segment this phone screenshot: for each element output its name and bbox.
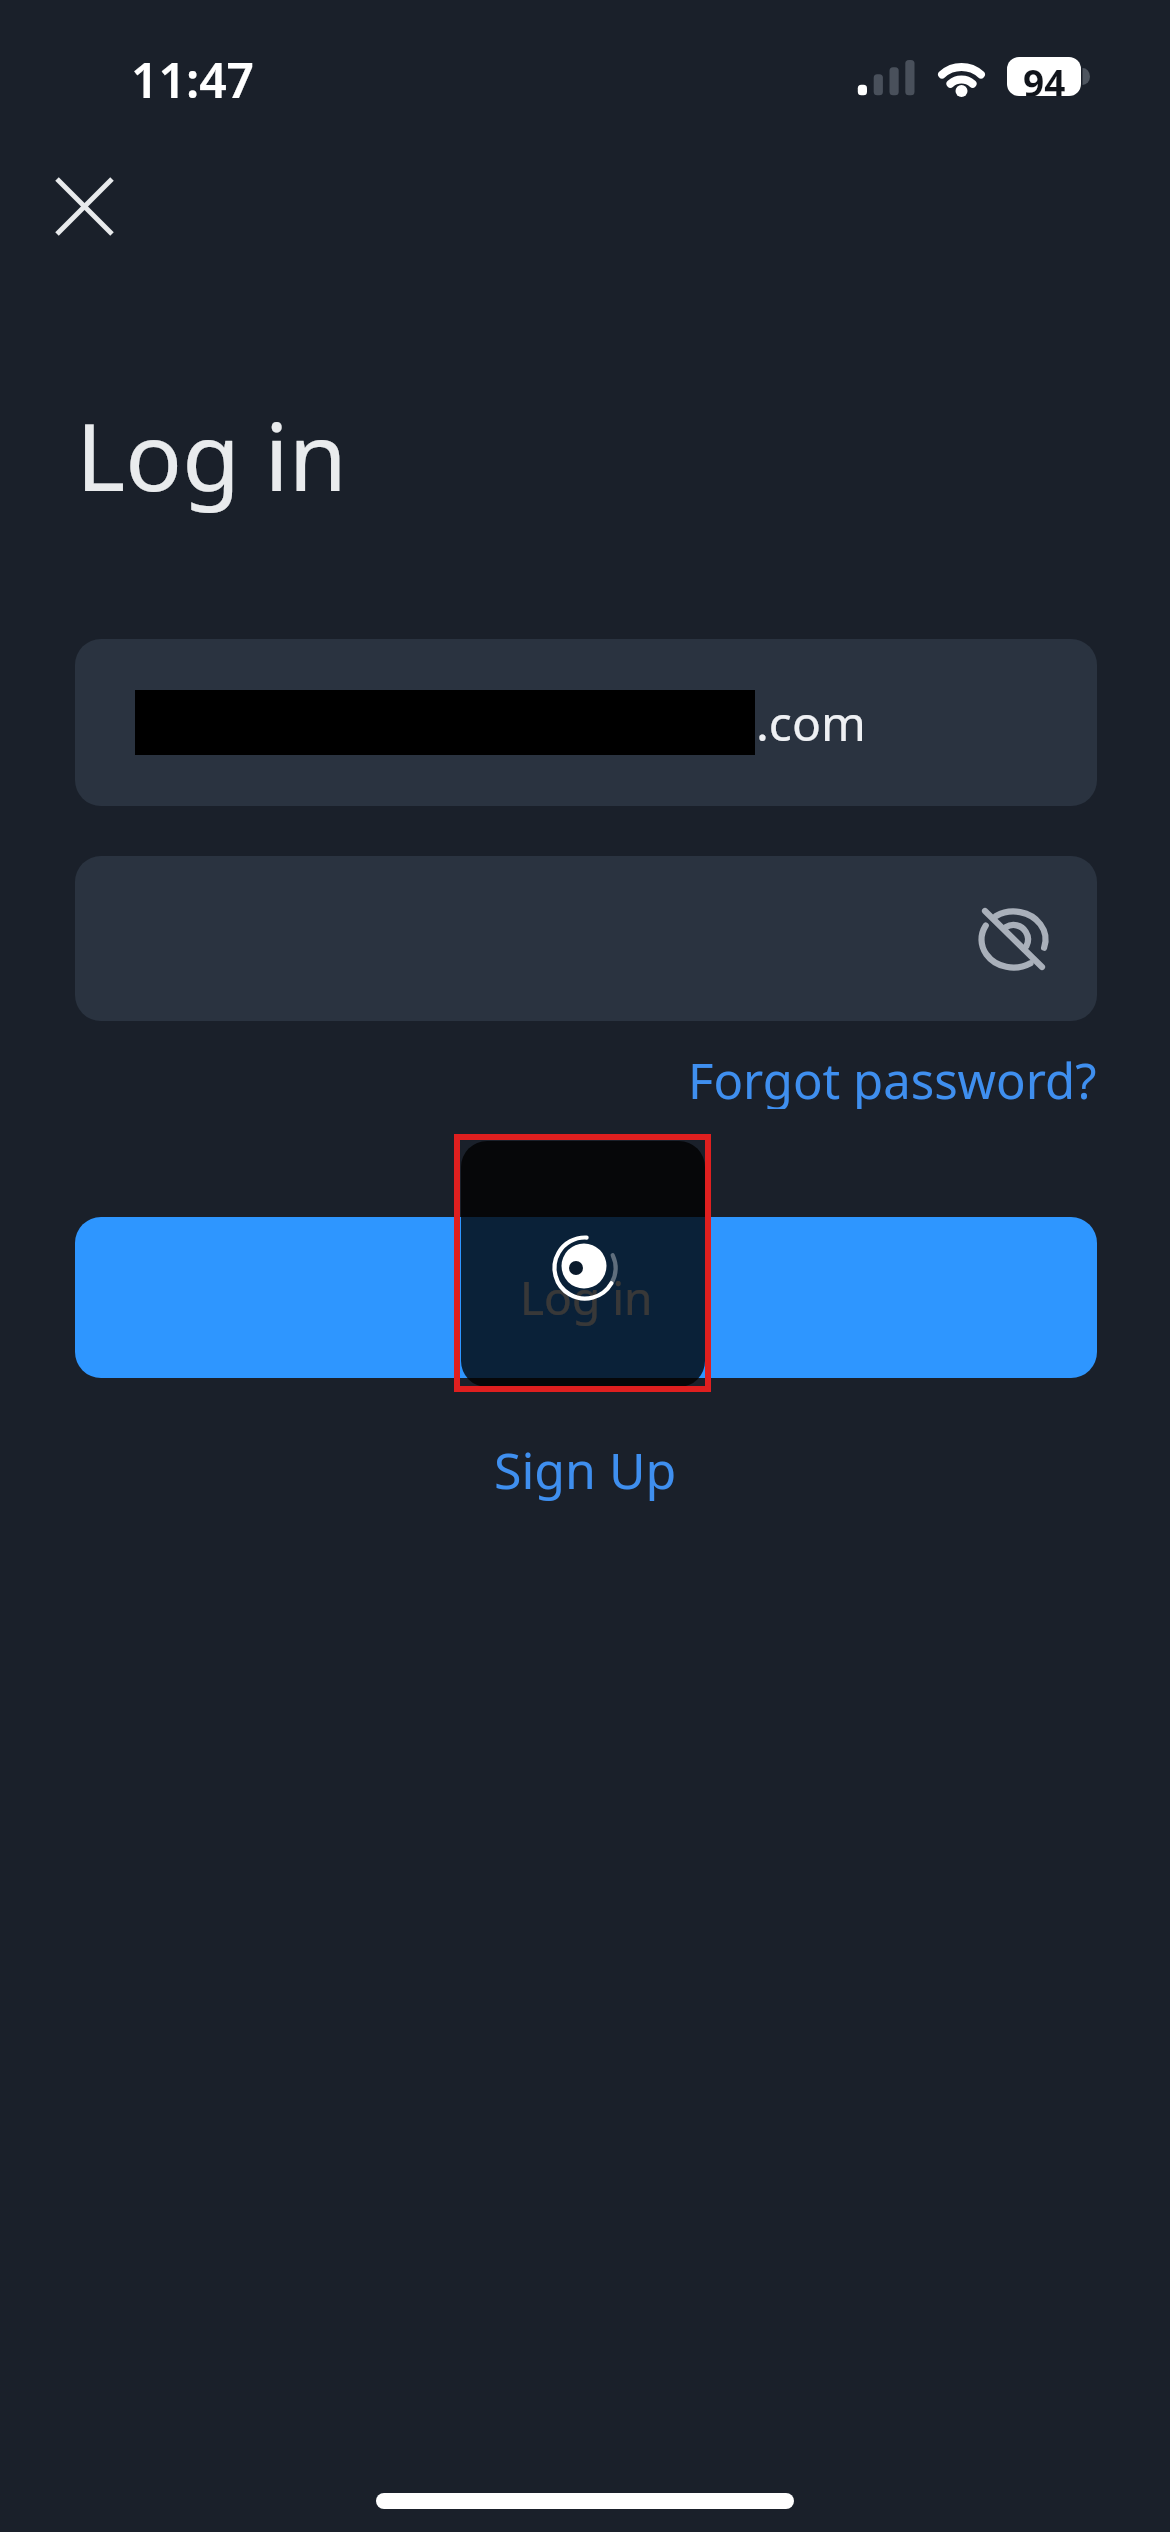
- staticText: Log in: [520, 1266, 653, 1329]
- button[interactable]: [75, 856, 1097, 1021]
- button[interactable]: .com: [75, 639, 1097, 806]
- staticText: Log in: [76, 391, 347, 519]
- button[interactable]: Log in: [75, 1217, 1097, 1378]
- staticText: 94: [1023, 57, 1066, 96]
- button[interactable]: Sign Up: [0, 0, 400, 70]
- button[interactable]: [36, 158, 136, 258]
- staticText: 11:47: [131, 47, 255, 107]
- staticText: Sign Up: [494, 1436, 677, 1504]
- staticText: .com: [756, 690, 866, 755]
- staticText: Forgot password?: [688, 1047, 1097, 1109]
